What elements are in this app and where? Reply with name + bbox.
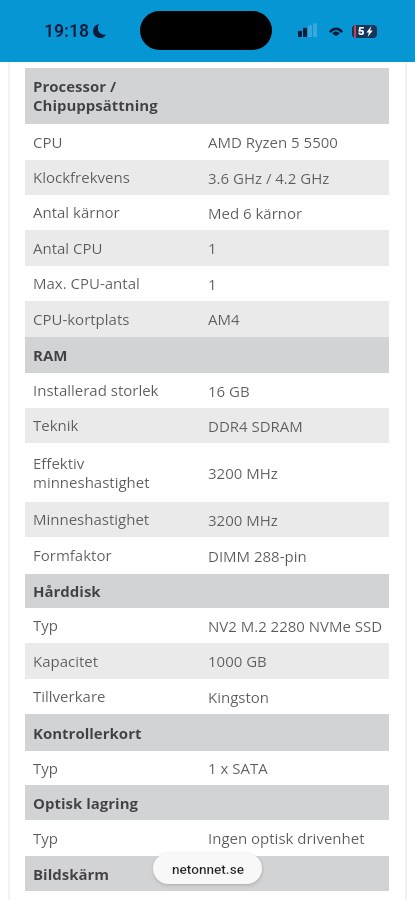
staticText: Tillverkare [33, 687, 208, 706]
button[interactable]: Kontrollerkort [25, 714, 389, 751]
button[interactable]: Klockfrekvens [25, 160, 389, 195]
staticText: 3200 MHz [208, 510, 278, 530]
staticText: DIMM 288-pin [208, 546, 307, 566]
staticText: Hårddisk [33, 581, 101, 601]
button[interactable]: Formfaktor [25, 537, 389, 574]
staticText: Max. CPU-antal [33, 274, 208, 293]
staticText: 1 [208, 238, 217, 258]
staticText: AM4 [208, 309, 240, 329]
button[interactable]: Antal kärnor [25, 195, 389, 230]
staticText: Klockfrekvens [33, 168, 208, 187]
staticText: 3.6 GHz / 4.2 GHz [208, 168, 330, 188]
button[interactable]: Hårddisk [25, 574, 389, 608]
button[interactable]: CPU-kortplats [25, 301, 389, 337]
button[interactable]: Antal CPU [25, 230, 389, 266]
staticText: 1000 GB [208, 651, 267, 671]
staticText: Typ [33, 616, 208, 635]
button[interactable]: Bildskärm [25, 856, 389, 891]
staticText: 19:18 [44, 21, 90, 42]
staticText: CPU-kortplats [33, 310, 208, 329]
button[interactable]: Kapacitet [25, 643, 389, 679]
staticText: Kingston [208, 687, 270, 707]
button[interactable]: Max. CPU-antal [25, 266, 389, 301]
staticText: 1 x SATA [208, 758, 268, 778]
staticText: Typ [33, 829, 208, 848]
button[interactable]: Typ [25, 608, 389, 643]
button[interactable]: Minneshastighet [25, 502, 389, 537]
staticText: RAM [33, 345, 68, 365]
staticText: Typ [33, 759, 208, 778]
button[interactable]: RAM [25, 337, 389, 373]
button[interactable]: Typ [25, 820, 389, 856]
button[interactable]: Installerad storlek [25, 373, 389, 408]
staticText: Ingen optisk drivenhet [208, 828, 365, 848]
staticText: Formfaktor [33, 546, 208, 565]
staticText: Teknik [33, 416, 208, 435]
staticText: DDR4 SDRAM [208, 416, 303, 436]
staticText: Minneshastighet [33, 510, 208, 529]
staticText: 3200 MHz [208, 463, 278, 483]
staticText: Kontrollerkort [33, 723, 142, 743]
staticText: Processor / Chipuppsättning [33, 76, 158, 116]
staticText: Effektiv minneshastighet [33, 454, 208, 492]
button[interactable]: Optisk lagring [25, 785, 389, 820]
staticText: AMD Ryzen 5 5500 [208, 132, 338, 152]
button[interactable]: Teknik [25, 408, 389, 443]
button[interactable]: CPU [25, 124, 389, 160]
button[interactable]: Tillverkare [25, 679, 389, 714]
staticText: Installerad storlek [33, 381, 208, 400]
staticText: 5 [358, 25, 365, 38]
staticText: netonnet.se [172, 861, 244, 877]
staticText: 1 [208, 274, 217, 294]
staticText: 16 GB [208, 381, 250, 401]
staticText: Bildskärm [33, 864, 110, 884]
button[interactable]: Typ [25, 751, 389, 785]
staticText: Kapacitet [33, 652, 208, 671]
staticText: Optisk lagring [33, 793, 139, 813]
staticText: Med 6 kärnor [208, 203, 303, 223]
button[interactable]: netonnet.se [153, 853, 262, 884]
staticText: Antal kärnor [33, 203, 208, 222]
staticText: CPU [33, 133, 208, 152]
staticText: NV2 M.2 2280 NVMe SSD [208, 616, 383, 636]
staticText: Antal CPU [33, 239, 208, 258]
button[interactable]: Effektiv minneshastighet [25, 443, 389, 502]
button[interactable]: Processor / Chipuppsättning [25, 68, 389, 124]
